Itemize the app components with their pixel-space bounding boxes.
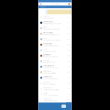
staticText: Thu <box>67 99 70 101</box>
staticText: Mon <box>67 60 70 62</box>
staticText: 8:02 <box>67 38 70 40</box>
button[interactable]: Marcus Webb <box>38 31 71 36</box>
button[interactable]: LinkedIn <box>38 58 71 64</box>
button[interactable]: Medium Daily <box>38 69 71 75</box>
staticText: Spotify <box>43 92 47 94</box>
staticText: Mon <box>67 55 70 57</box>
staticText: Follow up on the demo <box>43 100 57 102</box>
staticText: Nina Petrova <box>43 87 52 89</box>
button[interactable]: Priya Raman <box>38 42 71 47</box>
staticText: 5 new jobs for you <box>43 61 55 63</box>
staticText: New pull request opened <box>43 28 60 30</box>
staticText: Notion <box>43 37 47 39</box>
staticText: Daniel Rivas <box>43 54 51 56</box>
button[interactable]: GitHub <box>38 25 71 31</box>
button[interactable]: Tom Becker <box>38 75 71 80</box>
staticText: File shared with you <box>43 83 56 85</box>
button[interactable]: Sofia Lindgren <box>38 64 71 69</box>
staticText: Weekly design sync notes <box>43 23 61 25</box>
staticText: Calendar <box>43 15 50 17</box>
button[interactable]: Compose <box>61 104 66 108</box>
staticText: Conference travel plan <box>43 89 59 91</box>
button[interactable]: Calendar <box>38 14 71 20</box>
staticText: Standup at 10:00 <box>43 17 54 19</box>
staticText: Comment on Home v3 <box>43 50 57 52</box>
staticText: 9:41 <box>67 22 70 24</box>
staticText: Amanda Clark <box>43 21 53 23</box>
button[interactable]: Spotify <box>38 91 71 97</box>
staticText: Sofia Lindgren <box>43 65 54 67</box>
staticText: Contract review draft <box>43 78 57 80</box>
button[interactable]: Dropbox <box>38 80 71 86</box>
staticText: Medium Daily <box>43 70 51 72</box>
staticText: Tue <box>67 44 70 46</box>
staticText: Figma <box>43 48 47 50</box>
staticText: 9:52 <box>67 16 70 18</box>
staticText: Re: Q3 budget approval <box>43 34 59 36</box>
staticText: 8:55 <box>67 33 70 35</box>
button[interactable]: Notion <box>38 36 71 42</box>
staticText: Dropbox <box>43 81 50 83</box>
staticText: Your workspace digest <box>43 39 60 41</box>
staticText: GitHub <box>43 26 47 28</box>
button[interactable]: Figma <box>38 47 71 53</box>
staticText: LinkedIn <box>43 59 49 61</box>
button[interactable]: Alex Moreau <box>38 97 71 102</box>
button[interactable]: Nina Petrova <box>38 86 71 91</box>
staticText: Marcus Webb <box>43 32 53 34</box>
staticText: Photos from the retreat <box>43 45 58 47</box>
staticText: Priya Raman <box>43 43 52 45</box>
button[interactable]: Amanda Clark <box>38 20 71 25</box>
staticText: Tom Becker <box>43 76 52 78</box>
staticText: 9:12 <box>67 27 70 29</box>
staticText: Lunch on Thursday? <box>43 67 59 69</box>
staticText: Invoice 2291 attached <box>43 56 58 58</box>
staticText: Fri <box>68 88 70 90</box>
staticText: Primary <box>40 6 46 8</box>
button[interactable]: Daniel Rivas <box>38 53 71 58</box>
staticText: Your 2025 wrapped <box>43 94 58 96</box>
staticText: Alex Moreau <box>43 98 52 100</box>
staticText: Stories you might like <box>43 72 56 74</box>
